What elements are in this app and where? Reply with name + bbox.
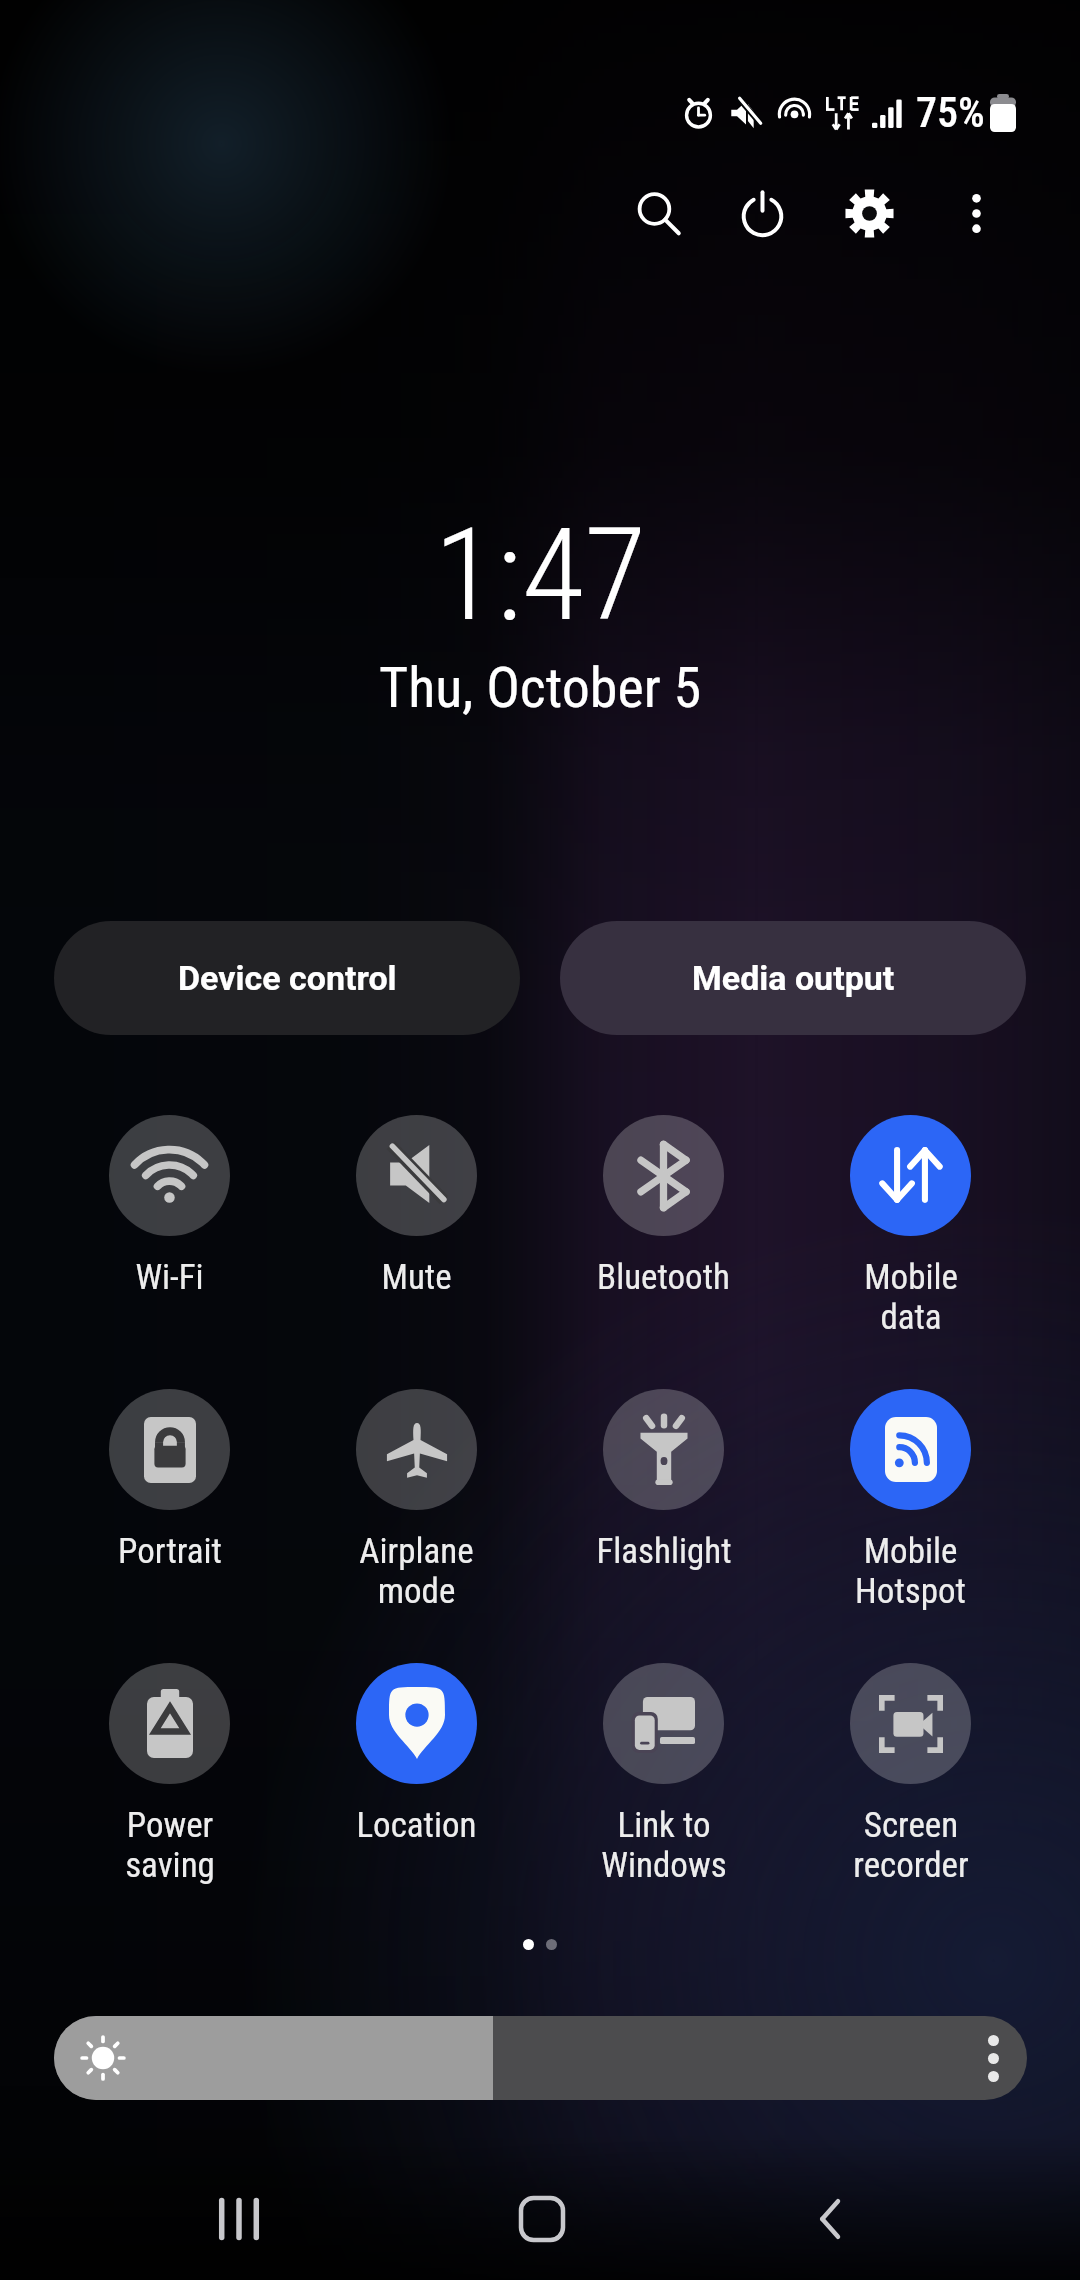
staticText: Mute [381,1257,452,1298]
button[interactable]: Device control [54,921,520,1035]
button[interactable]: Brightness [54,2016,1027,2100]
button[interactable]: More options [927,164,1025,262]
button[interactable]: Mobile data [787,1115,1034,1337]
button[interactable]: Home [452,2155,632,2280]
button[interactable]: Settings [820,164,918,262]
button[interactable]: Flashlight [540,1389,787,1572]
staticText: Screen recorder [853,1805,969,1885]
staticText: Airplane mode [359,1531,474,1611]
staticText: Mobile data [864,1257,958,1337]
button[interactable]: Back [740,2155,920,2280]
staticText: Flashlight [596,1531,732,1572]
staticText: Portrait [118,1531,222,1572]
staticText: Location [356,1805,477,1846]
staticText: 75% [916,88,985,137]
button[interactable]: Link to Windows [540,1663,787,1885]
staticText: Mobile Hotspot [855,1531,966,1611]
staticText: 1:47 [434,500,647,650]
button[interactable]: Power saving [46,1663,293,1885]
staticText: Link to Windows [601,1805,727,1885]
button[interactable]: Search [609,164,707,262]
button[interactable]: Mute [293,1115,540,1298]
button[interactable]: Airplane mode [293,1389,540,1611]
button[interactable]: Power off [713,164,811,262]
button[interactable]: Screen recorder [787,1663,1034,1885]
staticText: Device control [178,958,397,998]
button[interactable]: Portrait [46,1389,293,1572]
button[interactable]: Mobile Hotspot [787,1389,1034,1611]
staticText: Power saving [125,1805,215,1885]
button[interactable]: Bluetooth [540,1115,787,1298]
button[interactable]: Wi-Fi [46,1115,293,1298]
button[interactable]: Recents [149,2155,329,2280]
staticText: Bluetooth [597,1257,730,1298]
button[interactable]: Location [293,1663,540,1846]
staticText: Wi-Fi [135,1257,204,1298]
staticText: Media output [692,958,895,998]
button[interactable]: Media output [560,921,1026,1035]
staticText: Thu, October 5 [379,655,702,721]
